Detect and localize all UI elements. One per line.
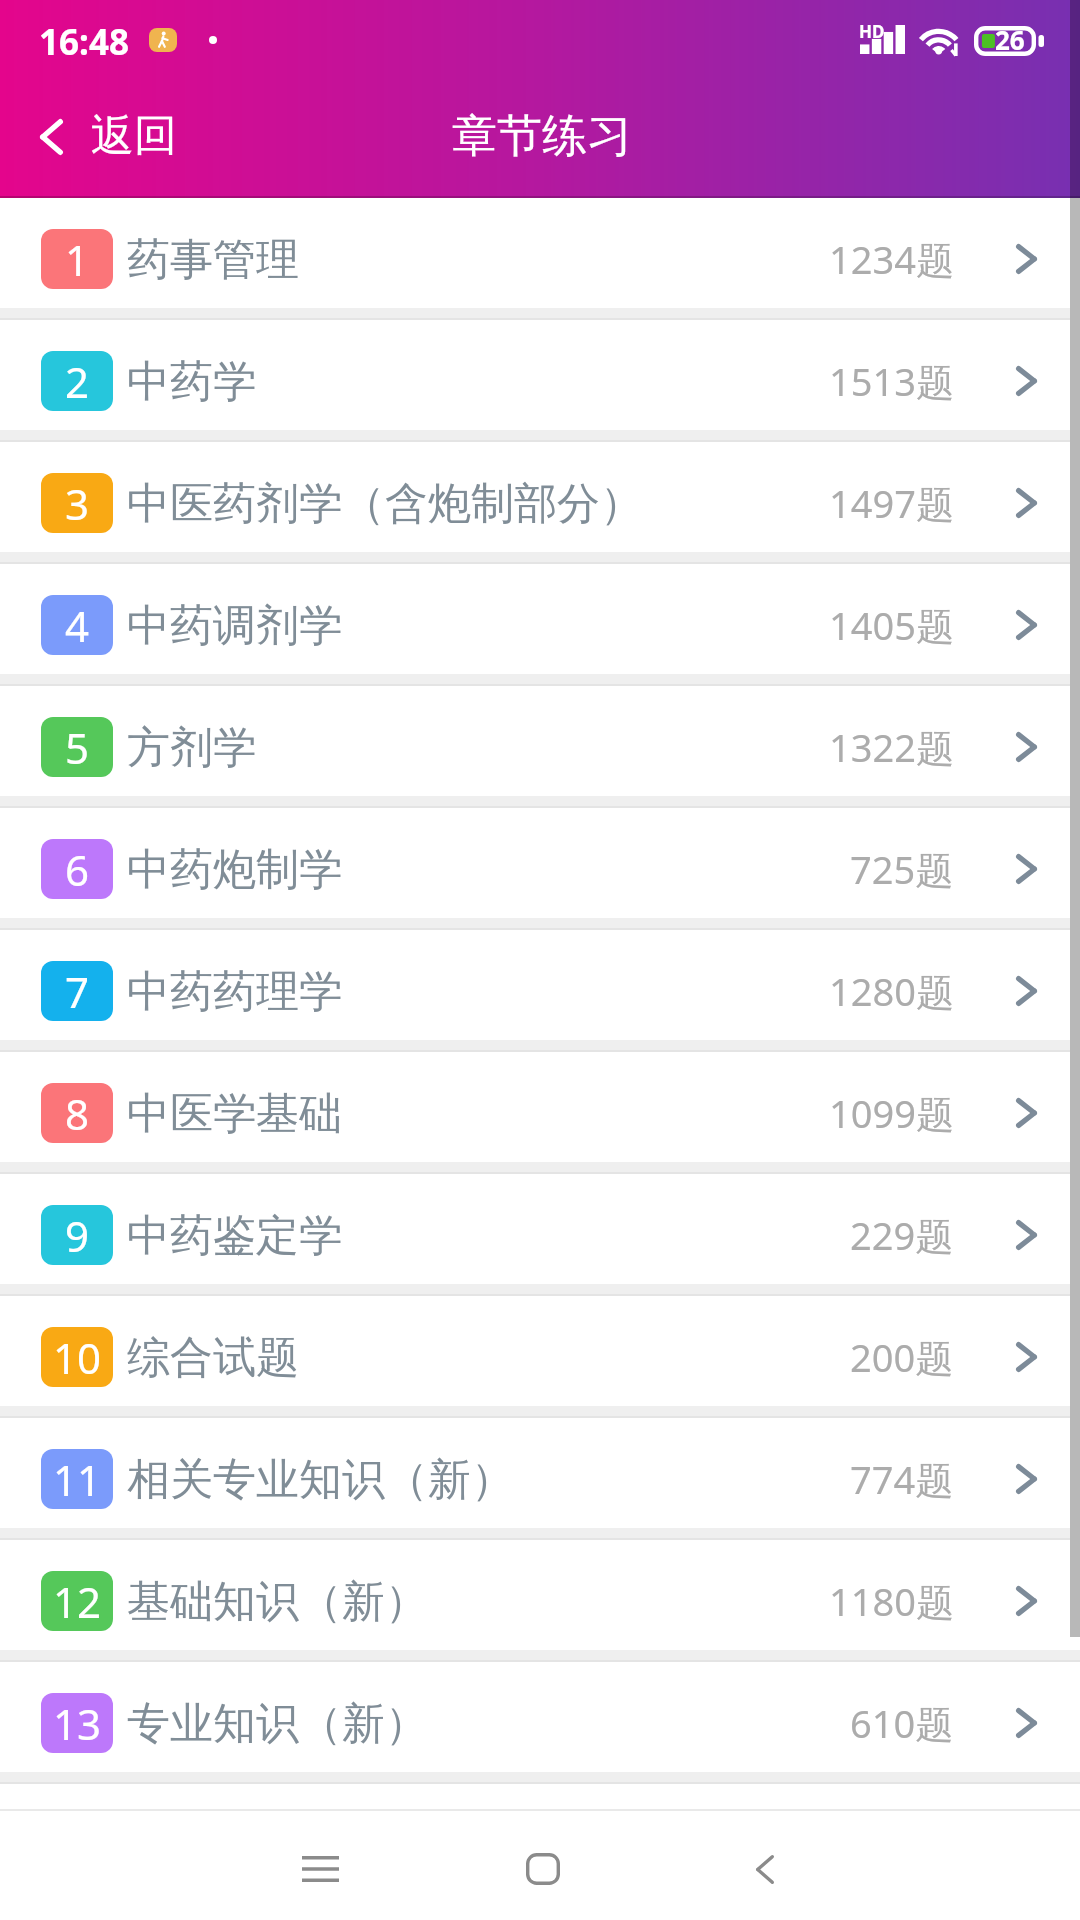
staticText: 9 — [65, 1207, 90, 1264]
button[interactable]: 13 — [0, 1662, 1080, 1772]
staticText: 1405题 — [829, 599, 954, 651]
staticText: 610题 — [850, 1697, 954, 1749]
staticText: 中药药理学 — [127, 965, 342, 1019]
button[interactable]: 7 — [0, 930, 1080, 1040]
staticText: 7 — [65, 963, 90, 1020]
staticText: 1513题 — [829, 355, 954, 407]
button[interactable]: 8 — [0, 1052, 1080, 1162]
staticText: 774题 — [850, 1453, 954, 1505]
button[interactable]: 3 — [0, 442, 1080, 552]
staticText: HD — [859, 20, 885, 43]
staticText: 1180题 — [829, 1575, 954, 1627]
button[interactable]: 返回 — [0, 86, 217, 198]
button[interactable]: 12 — [0, 1540, 1080, 1650]
staticText: 相关专业知识（新） — [127, 1453, 514, 1507]
staticText: 16:48 — [39, 18, 129, 66]
staticText: 中药炮制学 — [127, 843, 342, 897]
staticText: 中药调剂学 — [127, 599, 342, 653]
staticText: 综合试题 — [127, 1331, 299, 1385]
staticText: 1099题 — [829, 1087, 954, 1139]
button[interactable]: 11 — [0, 1418, 1080, 1528]
staticText: 6 — [65, 841, 90, 898]
button[interactable]: Recent apps — [255, 1821, 385, 1919]
staticText: 10 — [53, 1329, 102, 1386]
staticText: 8 — [65, 1085, 90, 1142]
staticText: 章节练习 — [452, 108, 632, 165]
button[interactable]: Home — [478, 1821, 608, 1919]
button[interactable]: 2 — [0, 320, 1080, 430]
staticText: 11 — [53, 1451, 102, 1508]
staticText: 725题 — [850, 843, 954, 895]
staticText: 1322题 — [829, 721, 954, 773]
button[interactable]: Back — [700, 1821, 830, 1919]
staticText: 26 — [995, 22, 1025, 57]
staticText: 方剂学 — [127, 721, 256, 775]
staticText: 药事管理 — [127, 233, 299, 287]
button[interactable]: 1 — [0, 198, 1080, 308]
button[interactable]: 6 — [0, 808, 1080, 918]
staticText: 5 — [65, 719, 90, 776]
staticText: 中医药剂学（含炮制部分） — [127, 477, 643, 531]
staticText: 基础知识（新） — [127, 1575, 428, 1629]
staticText: 返回 — [91, 109, 177, 163]
staticText: 200题 — [850, 1331, 954, 1383]
staticText: 专业知识（新） — [127, 1697, 428, 1751]
staticText: 13 — [53, 1695, 102, 1752]
staticText: 中药鉴定学 — [127, 1209, 342, 1263]
staticText: 1234题 — [829, 233, 954, 285]
staticText: 1497题 — [829, 477, 954, 529]
staticText: 229题 — [850, 1209, 954, 1261]
button[interactable]: 9 — [0, 1174, 1080, 1284]
staticText: 中医学基础 — [127, 1087, 342, 1141]
staticText: 3 — [65, 475, 90, 532]
staticText: 1280题 — [829, 965, 954, 1017]
staticText: 2 — [65, 353, 90, 410]
staticText: 1 — [65, 231, 90, 288]
staticText: 中药学 — [127, 355, 256, 409]
button[interactable]: 5 — [0, 686, 1080, 796]
button[interactable]: 4 — [0, 564, 1080, 674]
button[interactable]: 10 — [0, 1296, 1080, 1406]
staticText: 12 — [53, 1573, 102, 1630]
staticText: 4 — [65, 597, 90, 654]
